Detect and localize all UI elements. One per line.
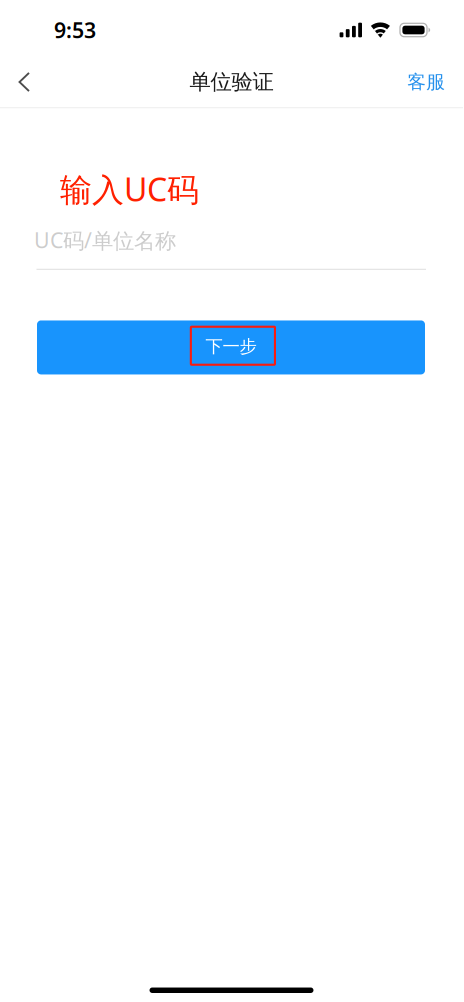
- staticText: 下一步: [205, 336, 256, 357]
- button[interactable]: 返回: [0, 60, 44, 104]
- staticText: UC码/单位名称: [34, 226, 176, 254]
- button[interactable]: 客服: [393, 60, 463, 104]
- staticText: 9:53: [54, 16, 96, 44]
- button[interactable]: 下一步: [37, 320, 425, 374]
- button[interactable]: UC码/单位名称: [0, 210, 463, 270]
- staticText: 客服: [407, 70, 445, 93]
- staticText: 单位验证: [189, 69, 273, 95]
- staticText: 输入UC码: [60, 168, 199, 210]
